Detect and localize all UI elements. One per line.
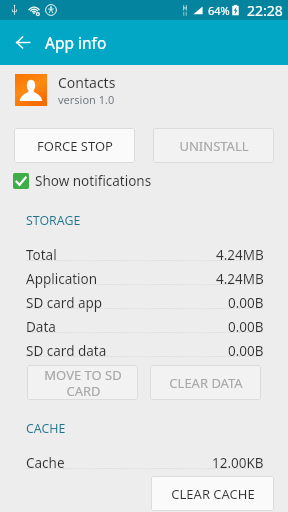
staticText: CLEAR DATA (169, 374, 243, 392)
staticText: Total (26, 246, 57, 264)
staticText: Data (26, 318, 56, 336)
button[interactable]: UNINSTALL (153, 128, 274, 163)
staticText: 64% (208, 3, 230, 18)
staticText: SD card data (26, 342, 107, 360)
staticText: Contacts (58, 73, 116, 92)
staticText: 22:28 (247, 1, 283, 20)
button[interactable]: Show notifications (13, 172, 152, 189)
staticText: SD card app (26, 294, 103, 312)
staticText: Application (26, 270, 98, 288)
staticText: 0.00B (228, 318, 264, 336)
staticText: App info (45, 32, 107, 53)
staticText: 4.24MB (216, 246, 264, 264)
button[interactable]: FORCE STOP (14, 128, 135, 163)
staticText: 0.00B (228, 294, 264, 312)
button[interactable]: Navigate up (0, 20, 45, 65)
staticText: 4.24MB (216, 270, 264, 288)
staticText: Cache (26, 454, 65, 472)
staticText: UNINSTALL (179, 137, 249, 155)
staticText: CARD (66, 382, 101, 400)
staticText: STORAGE (26, 212, 81, 229)
staticText: 0.00B (228, 342, 264, 360)
staticText: CLEAR CACHE (171, 485, 255, 503)
staticText: Show notifications (35, 172, 152, 189)
staticText: 12.00KB (212, 454, 264, 472)
staticText: FORCE STOP (37, 137, 113, 155)
staticText: version 1.0 (58, 92, 115, 107)
button[interactable]: CLEAR CACHE (151, 476, 274, 511)
staticText: CACHE (26, 420, 66, 437)
staticText: MOVE TO SD (44, 366, 122, 384)
button[interactable]: CLEAR DATA (150, 365, 261, 400)
button[interactable]: MOVE TO SD (27, 365, 138, 400)
